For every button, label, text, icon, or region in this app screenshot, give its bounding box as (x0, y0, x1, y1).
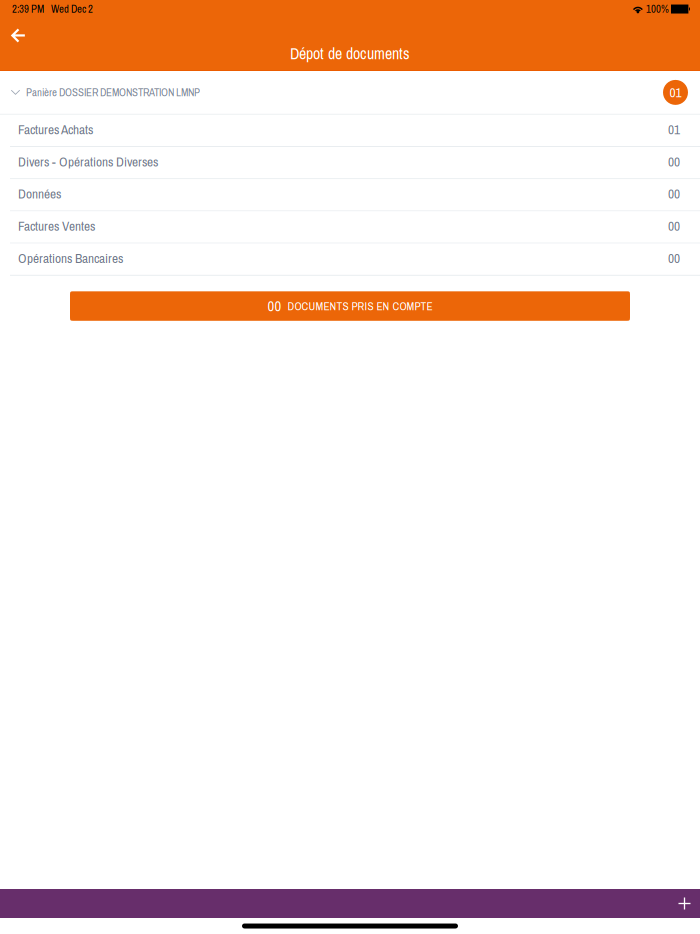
staticText: 00 (668, 249, 680, 267)
staticText: Dépot de documents (290, 43, 410, 64)
staticText: 00 (668, 185, 680, 203)
button[interactable]: Factures Achats (0, 115, 700, 146)
staticText: Données (18, 185, 61, 203)
staticText: Opérations Bancaires (18, 249, 123, 267)
button[interactable]: Données (0, 179, 700, 210)
staticText: Panière DOSSIER DEMONSTRATION LMNP (26, 85, 200, 100)
staticText: DOCUMENTS PRIS EN COMPTE (287, 298, 432, 314)
staticText: Wed Dec 2 (51, 2, 93, 16)
button[interactable]: Opérations Bancaires (0, 244, 700, 275)
button[interactable]: Divers - Opérations Diverses (0, 147, 700, 178)
staticText: 00 (668, 153, 680, 171)
staticText: Factures Achats (18, 120, 93, 138)
staticText: 01 (668, 120, 680, 138)
staticText: Factures Ventes (18, 217, 95, 235)
button[interactable]: Back (2, 19, 34, 51)
button[interactable]: Panière DOSSIER DEMONSTRATION LMNP (0, 71, 700, 114)
staticText: 2:39 PM (12, 2, 44, 16)
button[interactable]: 00 (70, 291, 630, 321)
staticText: Divers - Opérations Diverses (18, 153, 158, 171)
staticText: 01 (669, 83, 681, 101)
button[interactable]: Factures Ventes (0, 211, 700, 243)
staticText: 00 (267, 296, 281, 316)
staticText: 100% (646, 2, 669, 16)
staticText: 00 (668, 217, 680, 235)
button[interactable]: Add (670, 889, 699, 918)
